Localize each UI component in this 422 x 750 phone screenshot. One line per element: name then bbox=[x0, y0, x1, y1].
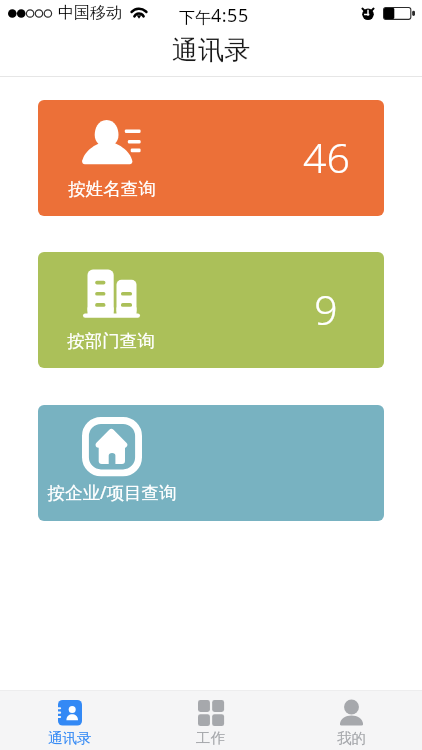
staticText: 我的 bbox=[337, 729, 366, 747]
staticText: 通讯录 bbox=[172, 34, 250, 67]
staticText: 按姓名查询 bbox=[68, 178, 156, 200]
staticText: 工作 bbox=[196, 729, 225, 747]
button[interactable]: 我的 bbox=[281, 691, 422, 750]
button[interactable]: 按姓名查询 bbox=[38, 100, 384, 216]
staticText: 通讯录 bbox=[48, 729, 92, 747]
staticText: 中国移动 bbox=[58, 3, 122, 23]
staticText: 46 bbox=[303, 129, 350, 185]
button[interactable]: 按部门查询 bbox=[38, 252, 384, 368]
staticText: 按部门查询 bbox=[67, 330, 155, 352]
staticText: 按企业/项目查询 bbox=[47, 480, 177, 504]
button[interactable]: 通讯录 bbox=[0, 691, 140, 750]
staticText: 9 bbox=[314, 281, 338, 337]
button[interactable]: 按企业/项目查询 bbox=[38, 405, 384, 521]
button[interactable]: 工作 bbox=[140, 691, 281, 750]
staticText: 下午 bbox=[179, 8, 211, 28]
staticText: 4:55 bbox=[211, 3, 249, 28]
